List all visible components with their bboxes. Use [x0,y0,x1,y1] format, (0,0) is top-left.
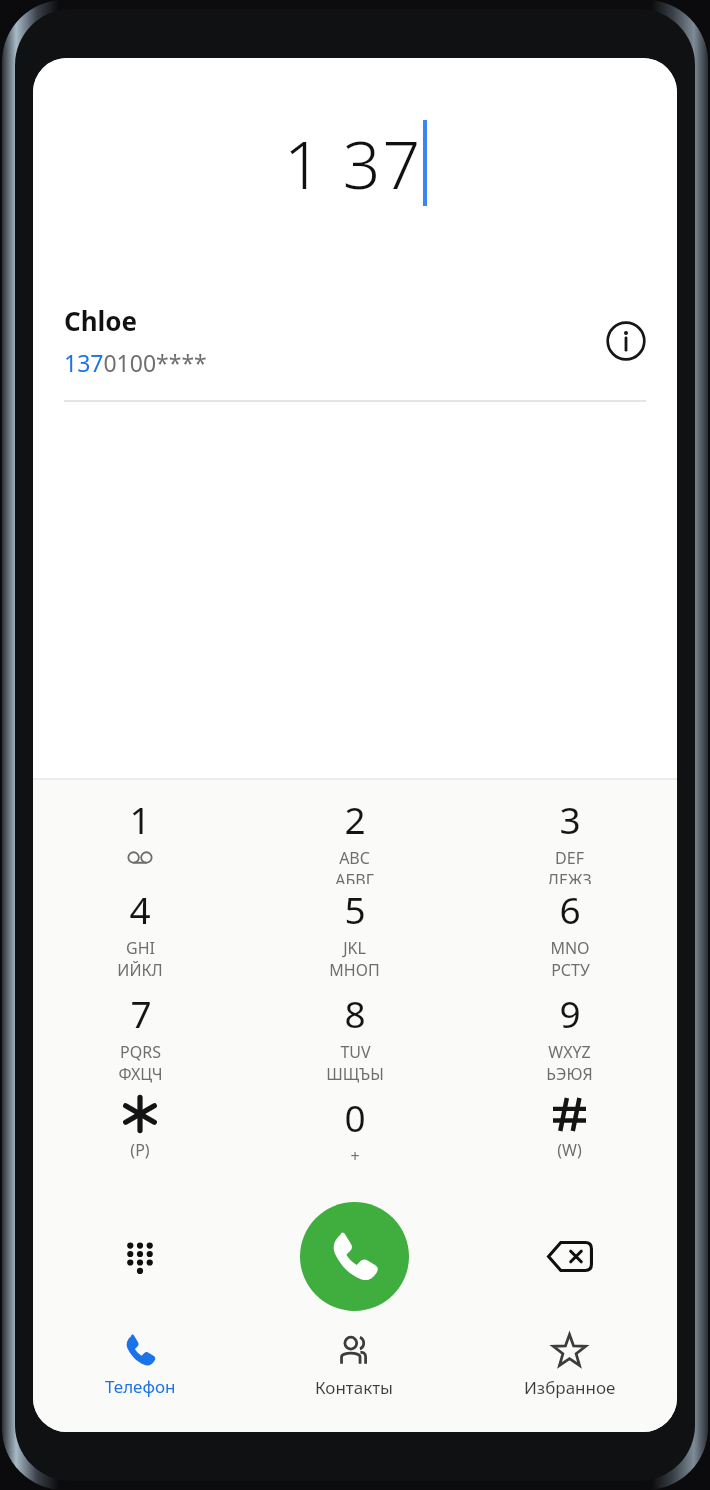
staticText: ФХЦЧ [118,1063,163,1085]
button[interactable]: Contact details [599,314,653,368]
staticText: PQRS [120,1041,161,1063]
staticText: ЬЭЮЯ [546,1063,593,1085]
staticText: 4 [129,884,151,934]
button[interactable]: 2 [247,794,462,884]
staticText: Контакты [315,1376,394,1399]
staticText: РСТУ [551,959,590,981]
staticText: ШЩЪЫ [326,1063,384,1085]
button[interactable]: (W) [462,1092,677,1196]
staticText: 3 [559,794,581,844]
staticText: Телефон [105,1375,176,1398]
button[interactable]: (P) [33,1092,247,1196]
staticText: JKL [343,937,366,959]
staticText: WXYZ [548,1041,591,1063]
button[interactable]: Избранное [462,1316,677,1414]
button[interactable]: Chloe [33,303,677,378]
staticText: 7 [130,988,152,1038]
staticText: 5 [344,884,366,934]
button[interactable]: 9 [462,988,677,1092]
button[interactable]: 6 [462,884,677,988]
staticText: Избранное [524,1376,616,1399]
button[interactable]: 1 [33,794,247,884]
button[interactable]: 7 [33,988,247,1092]
staticText: (P) [130,1139,150,1161]
staticText: DEF [555,847,584,869]
staticText: ДЕЖЗ [547,869,592,884]
staticText: АБВГ [335,869,374,884]
staticText: 8 [344,988,366,1038]
button[interactable]: Hide keypad [33,1196,247,1316]
staticText: 1 [129,794,151,844]
staticText: 2 [344,794,366,844]
staticText: GHI [126,937,155,959]
button[interactable]: 8 [247,988,462,1092]
staticText: 6 [559,884,581,934]
staticText: 1370100**** [64,347,207,378]
button[interactable]: 5 [247,884,462,988]
button[interactable]: 0 [247,1092,462,1196]
button[interactable]: Телефон [33,1316,247,1414]
staticText: МНОП [329,959,380,981]
button[interactable]: 3 [462,794,677,884]
staticText: 0 [344,1092,366,1142]
button[interactable]: Backspace [462,1196,677,1316]
button[interactable]: Контакты [247,1316,462,1414]
staticText: 1 37 [284,118,423,208]
staticText: TUV [340,1041,371,1063]
staticText: MNO [550,937,590,959]
staticText: Chloe [64,303,138,338]
staticText: 9 [559,988,581,1038]
staticText: (W) [557,1139,582,1161]
staticText: ABC [339,847,370,869]
staticText: ИЙКЛ [117,959,163,981]
button[interactable]: 4 [33,884,247,988]
staticText: + [350,1145,360,1167]
button[interactable]: Call [300,1202,409,1311]
